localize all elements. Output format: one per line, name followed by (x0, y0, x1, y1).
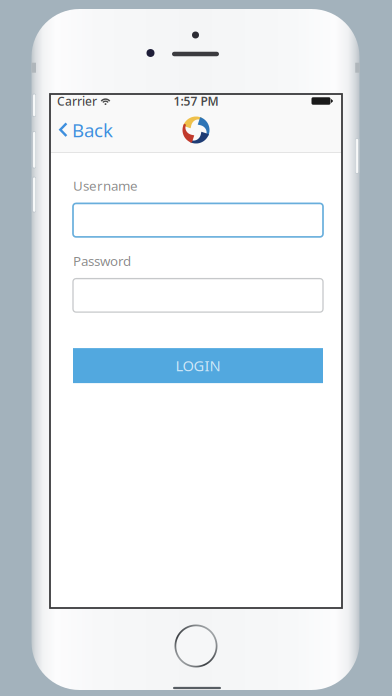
staticText: Carrier (57, 93, 97, 109)
button[interactable]: Back (50, 108, 123, 152)
button[interactable]: App logo (182, 116, 209, 143)
staticText: Password (73, 252, 131, 270)
staticText: 1:57 PM (173, 93, 218, 109)
button[interactable]: Password field (73, 279, 323, 312)
staticText: LOGIN (175, 356, 220, 375)
button[interactable]: LOGIN (73, 348, 323, 383)
staticText: Username (73, 177, 138, 194)
button[interactable]: Username field (73, 203, 323, 237)
staticText: Back (72, 118, 113, 142)
